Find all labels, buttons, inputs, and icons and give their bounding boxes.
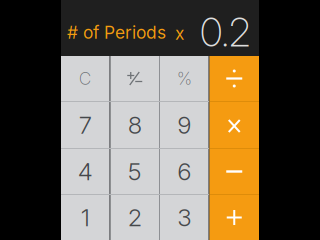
staticText: 1 (81, 203, 90, 232)
button[interactable]: Add (209, 195, 259, 240)
staticText: 5 (128, 157, 142, 186)
staticText: 6 (177, 157, 191, 186)
staticText: 0.2 (200, 9, 251, 56)
button[interactable]: % (160, 56, 208, 101)
button[interactable]: C (61, 56, 109, 101)
button[interactable]: Subtract (209, 149, 259, 194)
staticText: 7 (79, 110, 92, 139)
button[interactable]: 2 (110, 195, 159, 240)
button[interactable]: 3 (160, 195, 208, 240)
staticText: # of Periods (67, 22, 166, 43)
button[interactable]: 5 (110, 149, 159, 194)
button[interactable]: 9 (160, 102, 208, 148)
staticText: 2 (128, 203, 142, 232)
staticText: x (175, 23, 184, 44)
button[interactable]: 1 (61, 195, 109, 240)
button[interactable]: 8 (110, 102, 159, 148)
button[interactable]: 7 (61, 102, 109, 148)
button[interactable]: 4 (61, 149, 109, 194)
button[interactable]: Toggle sign (110, 56, 159, 101)
staticText: 4 (78, 157, 93, 186)
button[interactable]: Divide (209, 56, 259, 101)
button[interactable]: Multiply (209, 102, 259, 148)
staticText: % (177, 68, 192, 89)
staticText: C (79, 68, 92, 89)
staticText: 8 (128, 110, 142, 139)
button[interactable]: 6 (160, 149, 208, 194)
staticText: 9 (177, 110, 191, 139)
staticText: 3 (177, 203, 191, 232)
